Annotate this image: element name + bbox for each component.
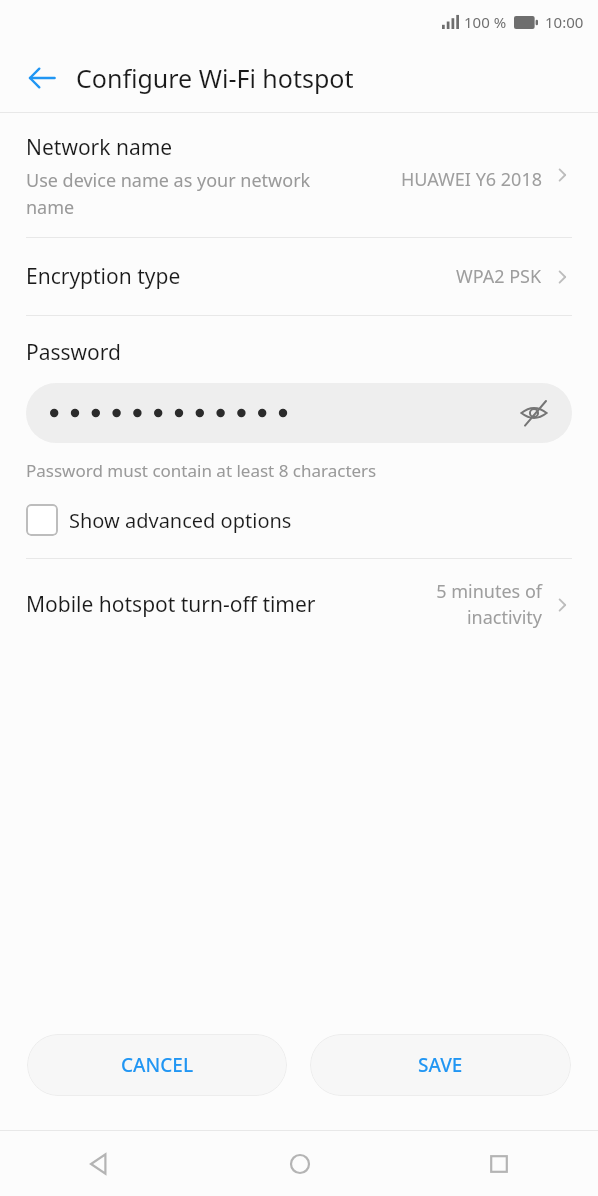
button[interactable]: Show advanced options [0, 482, 598, 558]
staticText: Use device name as your network name [26, 168, 350, 219]
button[interactable]: Back [16, 52, 68, 104]
button[interactable]: Recents [399, 1131, 598, 1196]
button[interactable]: Back [0, 1131, 200, 1196]
button[interactable]: CANCEL [27, 1034, 287, 1096]
button[interactable]: Show password [514, 393, 554, 433]
staticText: Password must contain at least 8 charact… [26, 459, 377, 482]
staticText: Password [26, 338, 121, 367]
staticText: 100 % [464, 12, 507, 32]
staticText: WPA2 PSK [456, 264, 542, 289]
staticText: Mobile hotspot turn-off timer [26, 590, 406, 619]
staticText: HUAWEI Y6 2018 [401, 167, 542, 192]
staticText: CANCEL [121, 1052, 194, 1078]
staticText: Network name [26, 133, 173, 162]
button[interactable]: Home [200, 1131, 399, 1196]
button[interactable]: Show password [26, 383, 572, 443]
button[interactable]: Network name [0, 113, 598, 237]
button[interactable]: SAVE [310, 1034, 571, 1096]
button[interactable]: Mobile hotspot turn-off timer [0, 559, 598, 650]
staticText: 5 minutes of inactivity [414, 579, 542, 630]
staticText: Encryption type [26, 262, 181, 291]
staticText: Show advanced options [69, 507, 292, 534]
button[interactable]: Encryption type [0, 238, 598, 315]
staticText: SAVE [418, 1052, 463, 1078]
staticText: Configure Wi-Fi hotspot [76, 61, 354, 95]
staticText: 10:00 [545, 12, 584, 32]
